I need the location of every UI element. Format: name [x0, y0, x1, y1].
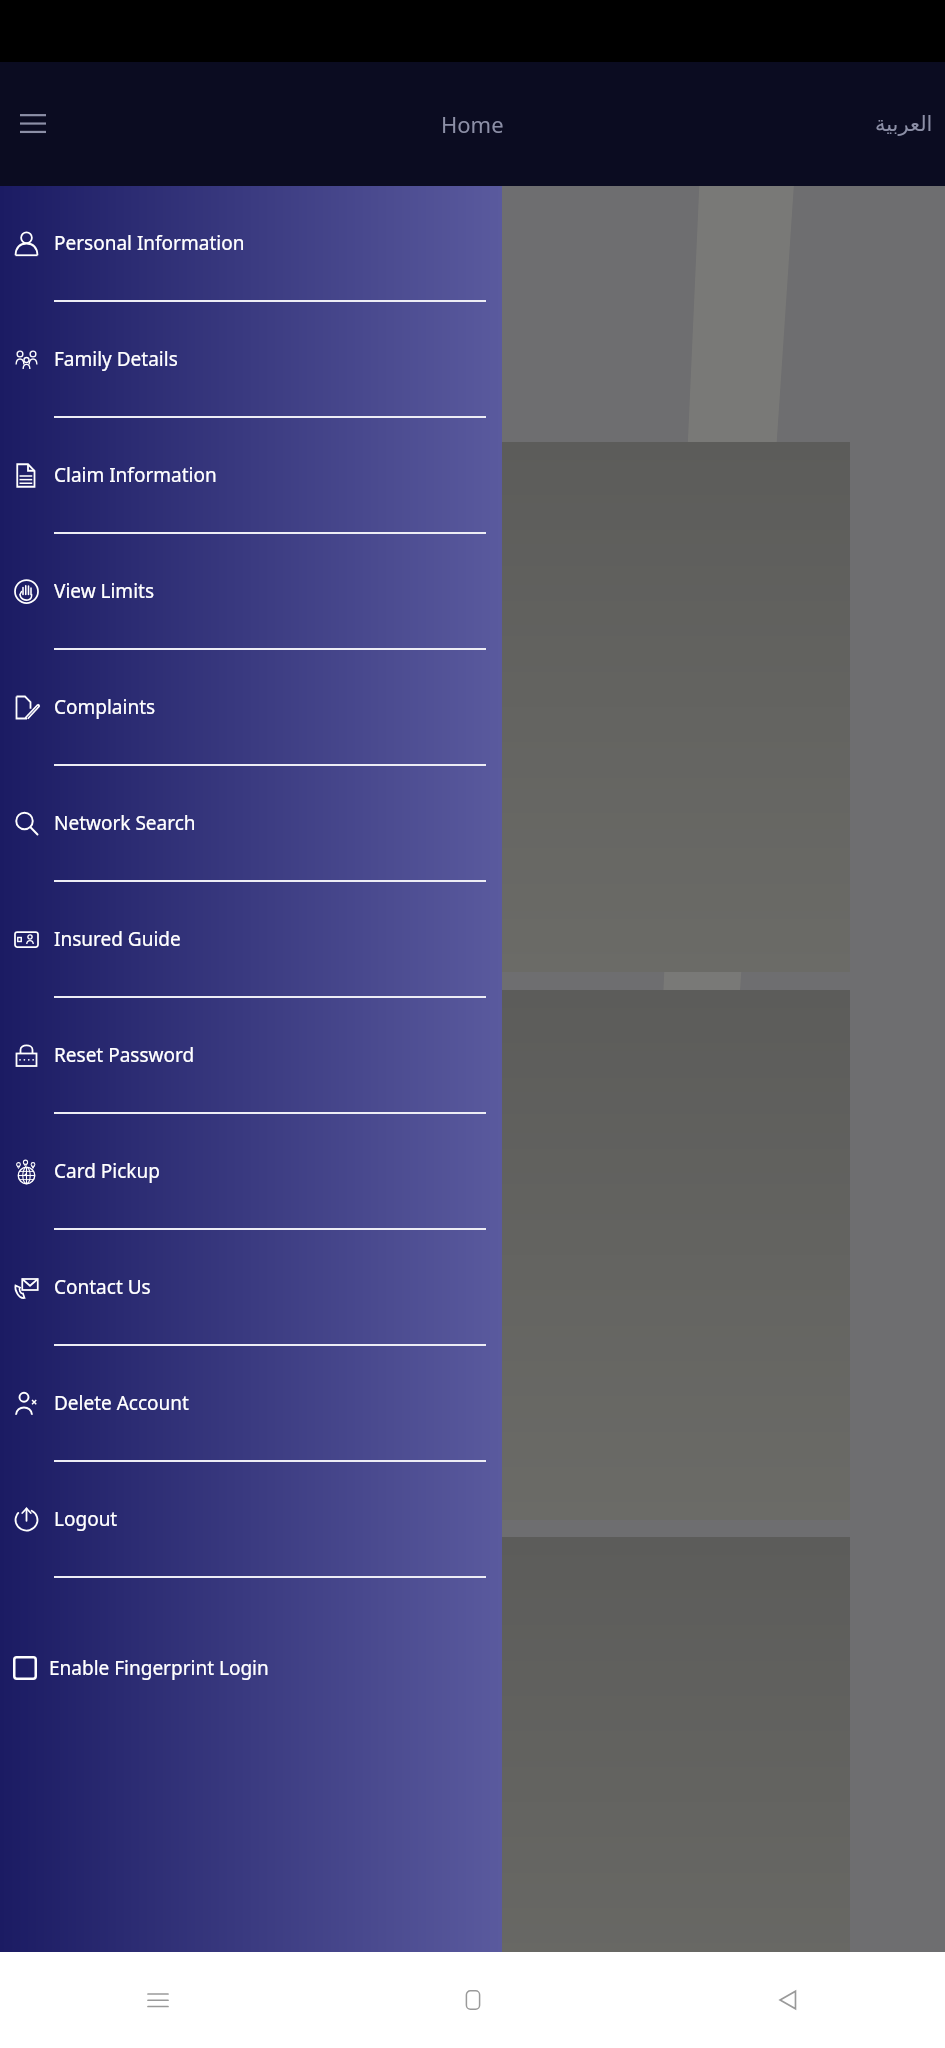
- staticText: Home: [441, 109, 504, 139]
- staticText: Enable Fingerprint Login: [49, 1655, 269, 1681]
- staticText: Card Pickup: [54, 1158, 160, 1184]
- button[interactable]: Card Pickup: [0, 1114, 502, 1230]
- button[interactable]: Claim Information: [0, 418, 502, 534]
- button[interactable]: Back: [630, 1952, 945, 2048]
- button[interactable]: Reset Password: [0, 998, 502, 1114]
- button[interactable]: Insured Guide: [0, 882, 502, 998]
- button[interactable]: Complaints: [0, 650, 502, 766]
- button[interactable]: Delete Account: [0, 1346, 502, 1462]
- button[interactable]: d Guide: [326, 1537, 850, 2048]
- staticText: Contact Us: [54, 1274, 151, 1300]
- staticText: Network Search: [54, 810, 196, 836]
- staticText: Complaints: [54, 694, 156, 720]
- staticText: Delete Account: [54, 1390, 189, 1416]
- button[interactable]: العربية: [871, 106, 937, 142]
- button[interactable]: laints: [326, 990, 850, 1520]
- button[interactable]: Personal Information: [0, 186, 502, 302]
- staticText: Insured Guide: [54, 926, 181, 952]
- button[interactable]: Logout: [0, 1462, 502, 1578]
- button[interactable]: Enable Fingerprint Login: [0, 1610, 502, 1726]
- staticText: Family Details: [54, 346, 178, 372]
- button[interactable]: Recent apps: [0, 1952, 315, 2048]
- staticText: العربية: [875, 112, 933, 136]
- button[interactable]: Network Search: [0, 766, 502, 882]
- button[interactable]: im: [326, 442, 850, 972]
- staticText: Claim Information: [54, 462, 217, 488]
- staticText: Reset Password: [54, 1042, 195, 1068]
- button[interactable]: Home: [315, 1952, 630, 2048]
- button[interactable]: Open navigation menu: [6, 97, 60, 151]
- button[interactable]: Contact Us: [0, 1230, 502, 1346]
- staticText: View Limits: [54, 578, 154, 604]
- button[interactable]: View Limits: [0, 534, 502, 650]
- staticText: im: [330, 524, 351, 547]
- button[interactable]: Family Details: [0, 302, 502, 418]
- staticText: Logout: [54, 1506, 118, 1532]
- staticText: Personal Information: [54, 230, 245, 256]
